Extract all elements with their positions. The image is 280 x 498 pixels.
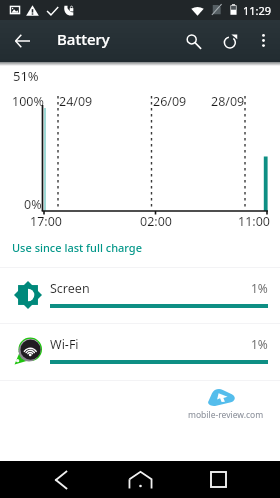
staticText: Screen [50, 280, 90, 297]
button[interactable]: Search [176, 24, 210, 58]
button[interactable]: More options [247, 24, 279, 56]
button[interactable]: Use since last full charge [0, 235, 280, 259]
staticText: 11:00 [238, 213, 270, 230]
staticText: Battery [57, 29, 110, 49]
staticText: Use since last full charge [12, 240, 142, 255]
staticText: 11:29 [243, 3, 272, 18]
staticText: Wi-Fi [50, 336, 79, 353]
staticText: 17:00 [30, 213, 62, 230]
staticText: 1% [251, 336, 268, 352]
button[interactable]: Back [6, 25, 38, 57]
button[interactable]: Home [112, 461, 168, 498]
staticText: mobile-review.com [188, 409, 264, 421]
staticText: 1% [251, 280, 268, 296]
staticText: 0% [24, 196, 42, 213]
button[interactable]: Back [33, 461, 89, 498]
button[interactable]: Screen [0, 268, 280, 324]
staticText: 02:00 [140, 213, 172, 230]
staticText: 26/09 [153, 93, 187, 110]
button[interactable]: Wi-Fi [0, 324, 280, 380]
button[interactable]: Recent apps [190, 461, 246, 498]
button[interactable]: Refresh [213, 24, 247, 58]
staticText: 24/09 [59, 93, 93, 110]
staticText: 100% [12, 93, 44, 110]
staticText: 28/09 [211, 93, 245, 110]
staticText: 51% [13, 67, 39, 85]
